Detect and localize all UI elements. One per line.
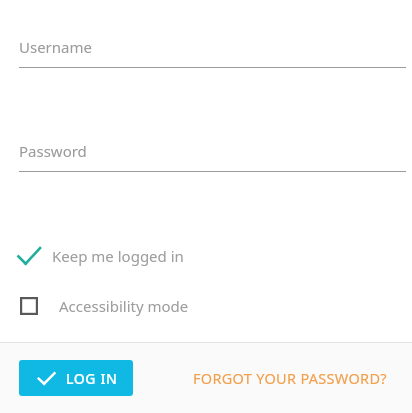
staticText: LOG IN: [66, 369, 118, 388]
button[interactable]: Username: [19, 36, 406, 68]
staticText: Accessibility mode: [59, 296, 189, 316]
staticText: Password: [19, 141, 87, 161]
button[interactable]: LOG IN: [19, 360, 133, 396]
staticText: Username: [19, 37, 92, 57]
button[interactable]: Keep me logged in: [14, 239, 184, 273]
staticText: Keep me logged in: [52, 246, 184, 266]
button[interactable]: Accessibility mode: [14, 290, 189, 322]
button[interactable]: Password: [19, 140, 406, 172]
staticText: FORGOT YOUR PASSWORD?: [193, 368, 387, 388]
button[interactable]: FORGOT YOUR PASSWORD?: [186, 360, 394, 396]
